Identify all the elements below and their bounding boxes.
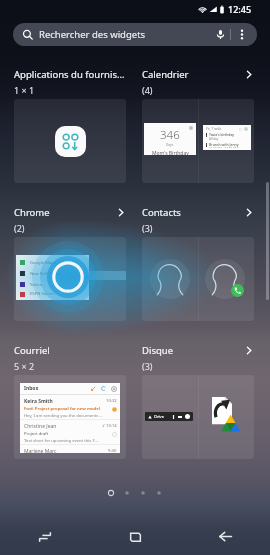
staticText: New York Times	[30, 271, 62, 277]
staticText: Christine Jean	[24, 423, 57, 430]
button[interactable]	[142, 237, 254, 321]
staticText: Project draft	[24, 431, 49, 437]
button[interactable]: Drive	[142, 375, 254, 459]
button[interactable]: Accueil	[90, 518, 180, 555]
button[interactable]: Google Maps	[14, 237, 126, 321]
button[interactable]: Plus d'options	[231, 23, 252, 46]
staticText: Keira Smith	[24, 398, 53, 405]
staticText: Mom's Birthday	[152, 150, 189, 155]
button[interactable]: Recherche vocale	[210, 23, 230, 46]
staticText: Days	[166, 143, 174, 147]
staticText: Applications du fournisse…	[14, 68, 126, 81]
staticText: Marlene Marc	[24, 448, 57, 453]
staticText: (4)	[142, 84, 153, 96]
staticText: Brunch with Jenny	[209, 142, 239, 147]
button[interactable]: Courriel	[14, 344, 126, 372]
staticText: 10:14	[106, 423, 117, 429]
button[interactable]: Chrome	[14, 206, 126, 234]
staticText: 11:00 AM - 12:00 PM	[209, 147, 238, 148]
staticText: Chrome	[14, 206, 50, 219]
button[interactable]	[14, 99, 126, 183]
staticText: Inbox	[24, 385, 39, 392]
staticText: Courriel	[14, 344, 50, 357]
button[interactable]: Disque	[142, 344, 254, 372]
staticText: Rechercher des widgets	[39, 28, 146, 41]
staticText: Fri, 7 août	[206, 127, 221, 131]
staticText: (3)	[142, 222, 153, 234]
button[interactable]: Contacts	[142, 206, 254, 234]
staticText: 10:32	[106, 398, 117, 404]
staticText: ESPN Soccer	[30, 291, 55, 297]
staticText: Google Maps	[30, 260, 56, 266]
staticText: Yahoo	[30, 282, 43, 288]
button[interactable]: 346	[142, 99, 254, 183]
staticText: Test short for upcoming event this Frida…	[24, 438, 99, 444]
staticText: Hey, I am sending you the documents next…	[24, 413, 103, 419]
button[interactable]: Applications du fournisse…	[14, 68, 126, 96]
button[interactable]: Calendrier	[142, 68, 254, 96]
staticText: Tavia's birthday	[209, 132, 235, 137]
staticText: Calendrier	[142, 68, 189, 81]
button[interactable]: Rechercher des widgets	[13, 23, 257, 46]
staticText: 5 × 2	[14, 360, 35, 372]
staticText: Fwd: Project proposal for new model	[24, 406, 100, 412]
button[interactable]: Inbox	[14, 375, 126, 459]
staticText: 9:40	[108, 448, 117, 453]
staticText: Contacts	[142, 206, 181, 219]
staticText: (3)	[142, 360, 153, 372]
staticText: (2)	[14, 222, 25, 234]
staticText: Disque	[142, 344, 174, 357]
staticText: All day	[209, 137, 219, 141]
button[interactable]: Applications récentes	[0, 518, 90, 555]
button[interactable]: Retour	[180, 518, 270, 555]
staticText: 1 × 1	[14, 84, 35, 96]
staticText: 346	[160, 127, 180, 143]
staticText: Drive	[154, 414, 164, 419]
staticText: 12:45	[228, 3, 252, 15]
